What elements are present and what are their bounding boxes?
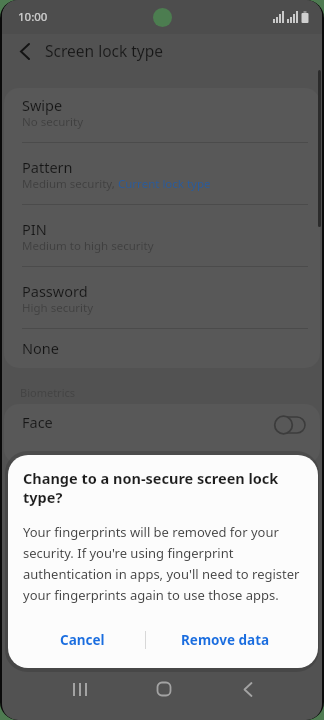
button[interactable]: Password [4, 266, 320, 328]
button[interactable]: Remove data [170, 623, 280, 657]
staticText: PIN [22, 219, 47, 239]
button[interactable]: Pattern [4, 142, 320, 204]
staticText: Change to a non-secure screen lock [23, 468, 279, 488]
staticText: None [22, 338, 59, 358]
staticText: Biometrics [20, 385, 76, 400]
staticText: Pattern [22, 157, 73, 177]
staticText: security. If you're using fingerprint [23, 544, 234, 562]
staticText: Swipe [22, 95, 63, 115]
staticText: Remove data [181, 631, 270, 649]
staticText: Screen lock type [45, 40, 164, 61]
staticText: 10:00 [18, 9, 48, 25]
button[interactable]: Cancel [38, 623, 126, 657]
button[interactable] [60, 669, 100, 709]
staticText: Password [22, 281, 88, 301]
staticText: authentication in apps, you'll need to r… [23, 565, 300, 583]
staticText: High security [22, 300, 94, 316]
button[interactable] [228, 669, 268, 709]
button[interactable]: PIN [4, 204, 320, 266]
staticText: Medium to high security [22, 238, 154, 254]
button[interactable] [144, 669, 184, 709]
button[interactable]: Face [4, 404, 320, 464]
staticText: Current lock type [118, 176, 211, 192]
staticText: No security [22, 114, 84, 130]
staticText: Cancel [60, 631, 105, 649]
button[interactable]: Swipe [4, 88, 320, 142]
button[interactable] [10, 36, 40, 66]
staticText: Medium security, [22, 176, 118, 192]
button[interactable]: None [4, 328, 320, 368]
staticText: Your fingerprints will be removed for yo… [23, 523, 279, 541]
staticText: your fingerprints again to use those app… [23, 586, 279, 604]
staticText: type? [23, 487, 63, 507]
staticText: Face [22, 412, 53, 432]
